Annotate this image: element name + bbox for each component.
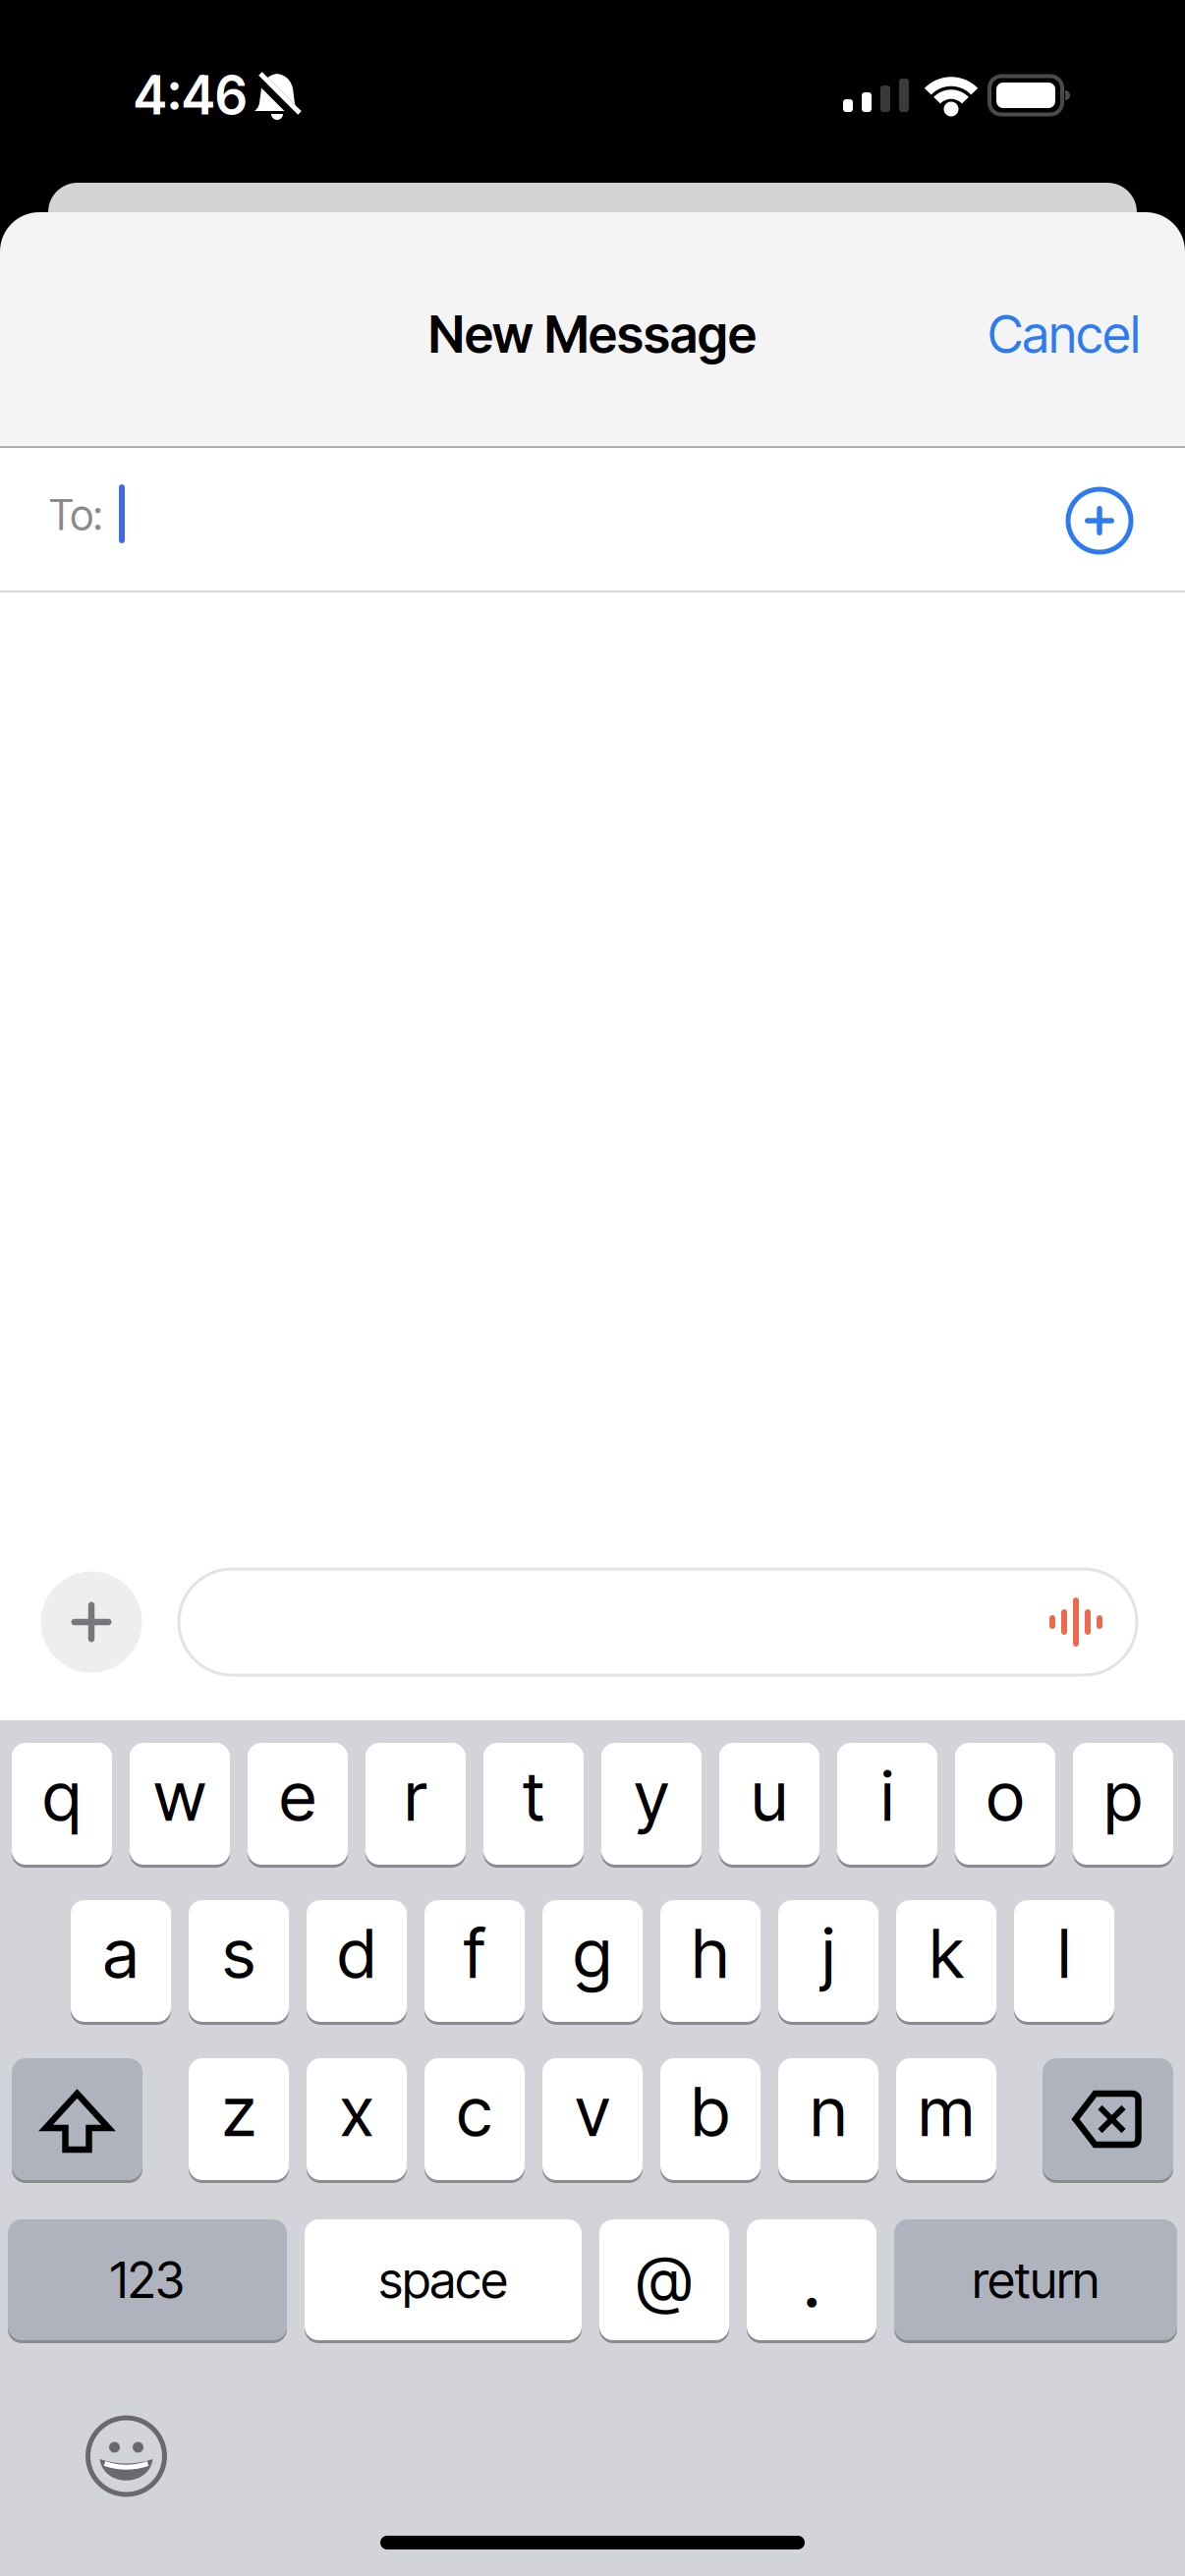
button[interactable]: @ (599, 2219, 729, 2340)
button[interactable]: l (1014, 1900, 1114, 2022)
staticText: b (691, 2071, 730, 2151)
staticText: l (1058, 1913, 1071, 1993)
button[interactable]: k (896, 1900, 996, 2022)
button[interactable]: m (896, 2058, 996, 2180)
button[interactable]: Message (179, 1569, 1137, 1675)
staticText: n (810, 2071, 846, 2151)
button[interactable]: s (189, 1900, 289, 2022)
button[interactable]: return (894, 2219, 1177, 2340)
button[interactable]: Emoji (88, 2418, 165, 2494)
button[interactable]: n (778, 2058, 878, 2180)
staticText: m (918, 2071, 974, 2151)
button[interactable]: space (305, 2219, 582, 2340)
staticText: To: (49, 490, 103, 539)
button[interactable]: q (12, 1743, 112, 1865)
button[interactable]: z (189, 2058, 289, 2180)
staticText: 123 (110, 2250, 185, 2309)
staticText: c (457, 2071, 492, 2151)
staticText: k (930, 1913, 963, 1993)
staticText: w (154, 1756, 206, 1836)
staticText: j (822, 1913, 835, 1993)
staticText: h (692, 1913, 729, 1993)
staticText: q (43, 1756, 81, 1836)
button[interactable]: 123 (8, 2219, 287, 2340)
staticText: a (103, 1913, 139, 1993)
button[interactable]: Add Contact (1068, 489, 1131, 552)
staticText: t (523, 1756, 544, 1836)
staticText: g (573, 1913, 612, 1993)
staticText: u (751, 1756, 788, 1836)
staticText: p (1104, 1756, 1142, 1836)
staticText: r (404, 1756, 427, 1836)
button[interactable]: p (1073, 1743, 1173, 1865)
staticText: 4:46 (134, 64, 248, 126)
button[interactable]: x (307, 2058, 407, 2180)
staticText: New Message (428, 304, 757, 364)
button[interactable]: d (307, 1900, 407, 2022)
staticText: Cancel (988, 304, 1140, 364)
staticText: s (223, 1913, 255, 1993)
staticText: space (379, 2250, 508, 2309)
staticText: e (280, 1756, 316, 1836)
button[interactable]: Add attachment (41, 1571, 142, 1673)
staticText: y (634, 1756, 669, 1836)
button[interactable]: u (719, 1743, 819, 1865)
staticText: d (338, 1913, 376, 1993)
button[interactable]: Delete (1043, 2058, 1173, 2180)
staticText: o (987, 1756, 1024, 1836)
button[interactable]: e (248, 1743, 348, 1865)
staticText: v (575, 2071, 610, 2151)
staticText: x (340, 2071, 373, 2151)
button[interactable]: b (660, 2058, 761, 2180)
button[interactable]: g (542, 1900, 643, 2022)
staticText: @ (636, 2243, 692, 2317)
button[interactable]: Dictation (1048, 1597, 1103, 1647)
button[interactable]: c (424, 2058, 525, 2180)
staticText: i (881, 1756, 894, 1836)
button[interactable]: i (837, 1743, 937, 1865)
button[interactable]: j (778, 1900, 878, 2022)
button[interactable]: h (660, 1900, 761, 2022)
button[interactable]: To: (0, 449, 1185, 590)
button[interactable]: w (130, 1743, 230, 1865)
button[interactable]: v (542, 2058, 643, 2180)
button[interactable]: r (366, 1743, 466, 1865)
button[interactable]: t (483, 1743, 584, 1865)
staticText: . (803, 2235, 820, 2325)
staticText: return (972, 2250, 1099, 2309)
button[interactable]: . (747, 2219, 876, 2340)
button[interactable]: y (601, 1743, 702, 1865)
button[interactable]: Shift (12, 2058, 142, 2180)
button[interactable]: Cancel (988, 304, 1140, 364)
button[interactable]: f (424, 1900, 525, 2022)
button[interactable]: a (71, 1900, 171, 2022)
staticText: z (222, 2071, 255, 2151)
button[interactable]: o (955, 1743, 1055, 1865)
staticText: f (464, 1913, 485, 1993)
